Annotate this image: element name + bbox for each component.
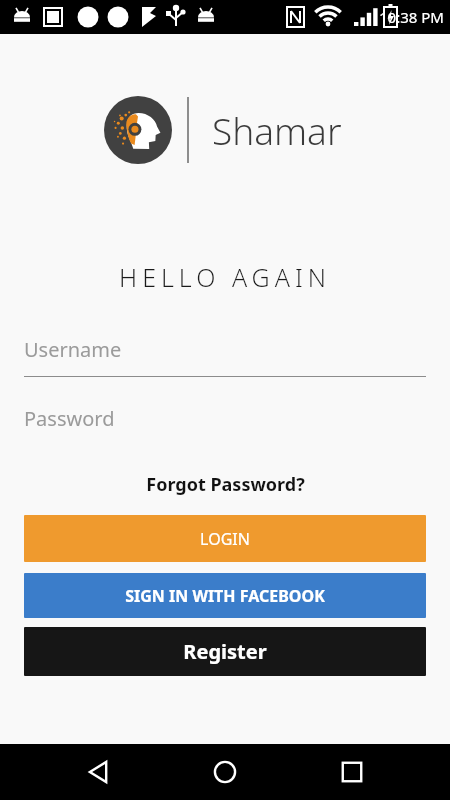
button[interactable]: Home (197, 744, 253, 800)
staticText: 10:38 PM (379, 7, 444, 27)
button[interactable]: Register (24, 627, 426, 676)
staticText: Username (24, 336, 122, 363)
staticText: Password (24, 405, 115, 432)
staticText: Shamar (212, 105, 342, 155)
button[interactable]: Forgot Password? (0, 472, 450, 497)
staticText: Forgot Password? (146, 472, 305, 497)
button[interactable]: Password (24, 405, 426, 446)
button[interactable]: Recent apps (324, 744, 380, 800)
button[interactable]: SIGN IN WITH FACEBOOK (24, 573, 426, 618)
button[interactable]: LOGIN (24, 515, 426, 562)
staticText: SIGN IN WITH FACEBOOK (125, 585, 325, 607)
button[interactable]: Back (71, 744, 127, 800)
staticText: Register (183, 638, 267, 665)
button[interactable]: Username (24, 336, 426, 377)
staticText: LOGIN (200, 528, 250, 550)
staticText: HELLO AGAIN (0, 260, 450, 294)
